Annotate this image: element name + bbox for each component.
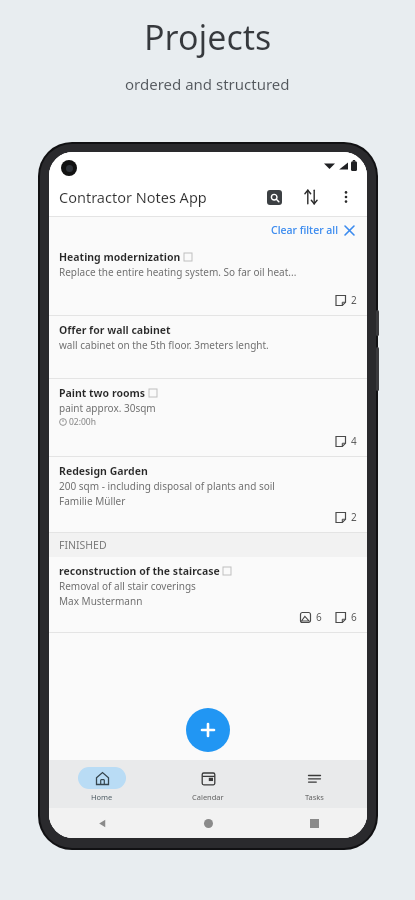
staticText: 6 xyxy=(351,610,357,624)
staticText: Clear filter all xyxy=(271,223,339,237)
staticText: 6 xyxy=(316,610,322,624)
staticText: 200 sqm - including disposal of plants a… xyxy=(59,479,275,493)
button[interactable]: Paint two rooms xyxy=(49,379,367,456)
staticText: Removal of all stair coverings xyxy=(59,579,196,593)
staticText: reconstruction of the staircase xyxy=(59,564,220,578)
button[interactable]: reconstruction of the staircase xyxy=(49,557,367,632)
staticText: Projects xyxy=(144,14,272,60)
button[interactable]: Home xyxy=(49,760,155,808)
button[interactable]: Heating modernization xyxy=(49,243,367,315)
staticText: ordered and structured xyxy=(125,74,290,94)
button[interactable]: Redesign Garden xyxy=(49,457,367,532)
staticText: Max Mustermann xyxy=(59,594,143,608)
staticText: Home xyxy=(91,792,113,802)
button[interactable]: Sort xyxy=(299,185,323,209)
staticText: Calendar xyxy=(192,792,224,802)
staticText: 2 xyxy=(351,510,357,524)
staticText: Paint two rooms xyxy=(59,386,146,400)
staticText: paint approx. 30sqm xyxy=(59,401,156,415)
staticText: Offer for wall cabinet xyxy=(59,323,171,337)
button[interactable]: Clear filter all xyxy=(269,221,357,239)
staticText: 4 xyxy=(351,434,357,448)
button[interactable]: Offer for wall cabinet xyxy=(49,316,367,378)
button[interactable]: Back xyxy=(49,808,155,838)
staticText: Familie Müller xyxy=(59,494,126,508)
staticText: Tasks xyxy=(305,792,324,802)
staticText: wall cabinet on the 5th floor. 3meters l… xyxy=(59,338,269,352)
staticText: FINISHED xyxy=(59,538,107,552)
button[interactable]: Calendar xyxy=(155,760,261,808)
staticText: Contractor Notes App xyxy=(59,187,207,207)
button[interactable]: Tasks xyxy=(261,760,367,808)
button[interactable]: Search xyxy=(263,186,285,208)
button[interactable]: More options xyxy=(335,186,357,208)
staticText: 2 xyxy=(351,293,357,307)
staticText: Heating modernization xyxy=(59,250,181,264)
button[interactable]: Home xyxy=(155,808,261,838)
button[interactable]: Add project xyxy=(186,708,230,752)
button[interactable]: Recents xyxy=(261,808,367,838)
staticText: 02:00h xyxy=(69,416,96,428)
staticText: Replace the entire heating system. So fa… xyxy=(59,265,297,279)
staticText: Redesign Garden xyxy=(59,464,148,478)
